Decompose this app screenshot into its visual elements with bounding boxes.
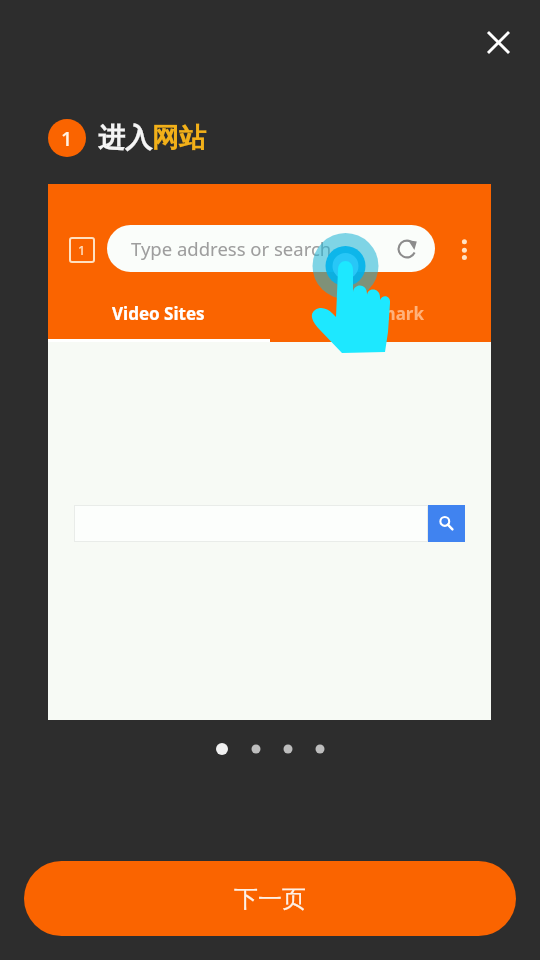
staticText: 1	[78, 241, 86, 259]
button[interactable]	[74, 505, 428, 542]
button[interactable]: More options	[448, 224, 481, 272]
staticText: 下一页	[234, 884, 306, 914]
staticText: 1	[61, 125, 73, 152]
staticText: Video Sites	[112, 302, 205, 325]
button[interactable]: Close	[476, 20, 520, 64]
button[interactable]: Video Sites	[48, 284, 269, 342]
button[interactable]: Type address or search	[107, 225, 435, 272]
staticText: Bookmark	[336, 302, 424, 325]
button[interactable]: Bookmark	[269, 284, 491, 342]
staticText: 进入网站	[98, 121, 206, 155]
button[interactable]: 下一页	[24, 861, 516, 936]
button[interactable]: Tabs: 1 open	[69, 237, 95, 263]
button[interactable]: Search	[428, 505, 465, 542]
staticText: Type address or search	[131, 236, 332, 261]
